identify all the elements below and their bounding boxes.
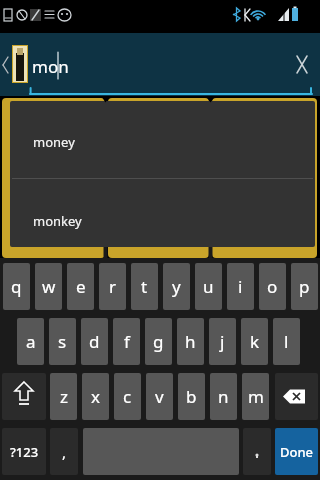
staticText: . bbox=[255, 442, 260, 462]
button[interactable]: t bbox=[131, 263, 158, 310]
staticText: z bbox=[60, 385, 68, 408]
staticText: n bbox=[218, 385, 229, 408]
staticText: q bbox=[11, 275, 22, 298]
staticText: k bbox=[250, 330, 260, 353]
staticText: money bbox=[33, 133, 75, 151]
button[interactable]: r bbox=[99, 263, 126, 310]
staticText: s bbox=[58, 330, 67, 353]
button[interactable]: g bbox=[145, 318, 172, 365]
staticText: Done bbox=[280, 443, 314, 461]
staticText: monkey bbox=[33, 212, 82, 230]
button[interactable]: f bbox=[113, 318, 140, 365]
staticText: f bbox=[124, 330, 130, 353]
staticText: m bbox=[248, 385, 264, 408]
staticText: , bbox=[62, 442, 67, 462]
staticText: o bbox=[267, 275, 278, 298]
button[interactable]: v bbox=[146, 373, 173, 420]
staticText: i bbox=[238, 275, 243, 298]
button[interactable]: Delete bbox=[275, 373, 318, 420]
button[interactable]: d bbox=[81, 318, 108, 365]
button[interactable]: y bbox=[163, 263, 190, 310]
button[interactable]: e bbox=[67, 263, 94, 310]
button[interactable]: Clear query bbox=[290, 50, 318, 78]
staticText: p bbox=[299, 275, 310, 298]
staticText: w bbox=[42, 275, 56, 298]
staticText: e bbox=[76, 275, 86, 298]
button[interactable]: l bbox=[273, 318, 300, 365]
staticText: d bbox=[89, 330, 100, 353]
button[interactable]: m bbox=[242, 373, 269, 420]
staticText: j bbox=[220, 330, 225, 353]
button[interactable]: o bbox=[259, 263, 286, 310]
staticText: l bbox=[284, 330, 289, 353]
button[interactable]: a bbox=[17, 318, 44, 365]
button[interactable]: Shift bbox=[2, 373, 46, 420]
button[interactable]: . bbox=[243, 428, 271, 475]
button[interactable]: monkey bbox=[10, 179, 315, 247]
button[interactable]: Contact photo bbox=[12, 45, 28, 83]
button[interactable]: k bbox=[241, 318, 268, 365]
staticText: h bbox=[185, 330, 196, 353]
button[interactable]: j bbox=[209, 318, 236, 365]
staticText: u bbox=[203, 275, 214, 298]
button[interactable]: Back bbox=[0, 48, 12, 82]
button[interactable]: c bbox=[114, 373, 141, 420]
staticText: ?123 bbox=[10, 443, 39, 461]
button[interactable]: Done bbox=[275, 428, 318, 475]
button[interactable]: w bbox=[35, 263, 62, 310]
staticText: b bbox=[186, 385, 197, 408]
button[interactable]: q bbox=[3, 263, 30, 310]
staticText: c bbox=[123, 385, 132, 408]
button[interactable]: h bbox=[177, 318, 204, 365]
staticText: g bbox=[153, 330, 164, 353]
button[interactable]: u bbox=[195, 263, 222, 310]
button[interactable]: p bbox=[291, 263, 318, 310]
button[interactable]: s bbox=[49, 318, 76, 365]
staticText: mon bbox=[32, 55, 69, 78]
button[interactable]: ?123 bbox=[2, 428, 46, 475]
button[interactable]: z bbox=[50, 373, 77, 420]
button[interactable]: x bbox=[82, 373, 109, 420]
staticText: y bbox=[172, 275, 181, 298]
staticText: r bbox=[109, 275, 117, 298]
button[interactable]: n bbox=[210, 373, 237, 420]
staticText: a bbox=[26, 330, 36, 353]
button[interactable]: money bbox=[10, 101, 315, 178]
staticText: v bbox=[155, 385, 164, 408]
button[interactable]: , bbox=[50, 428, 78, 475]
staticText: x bbox=[91, 385, 100, 408]
button[interactable]: i bbox=[227, 263, 254, 310]
button[interactable]: b bbox=[178, 373, 205, 420]
staticText: t bbox=[141, 275, 148, 298]
